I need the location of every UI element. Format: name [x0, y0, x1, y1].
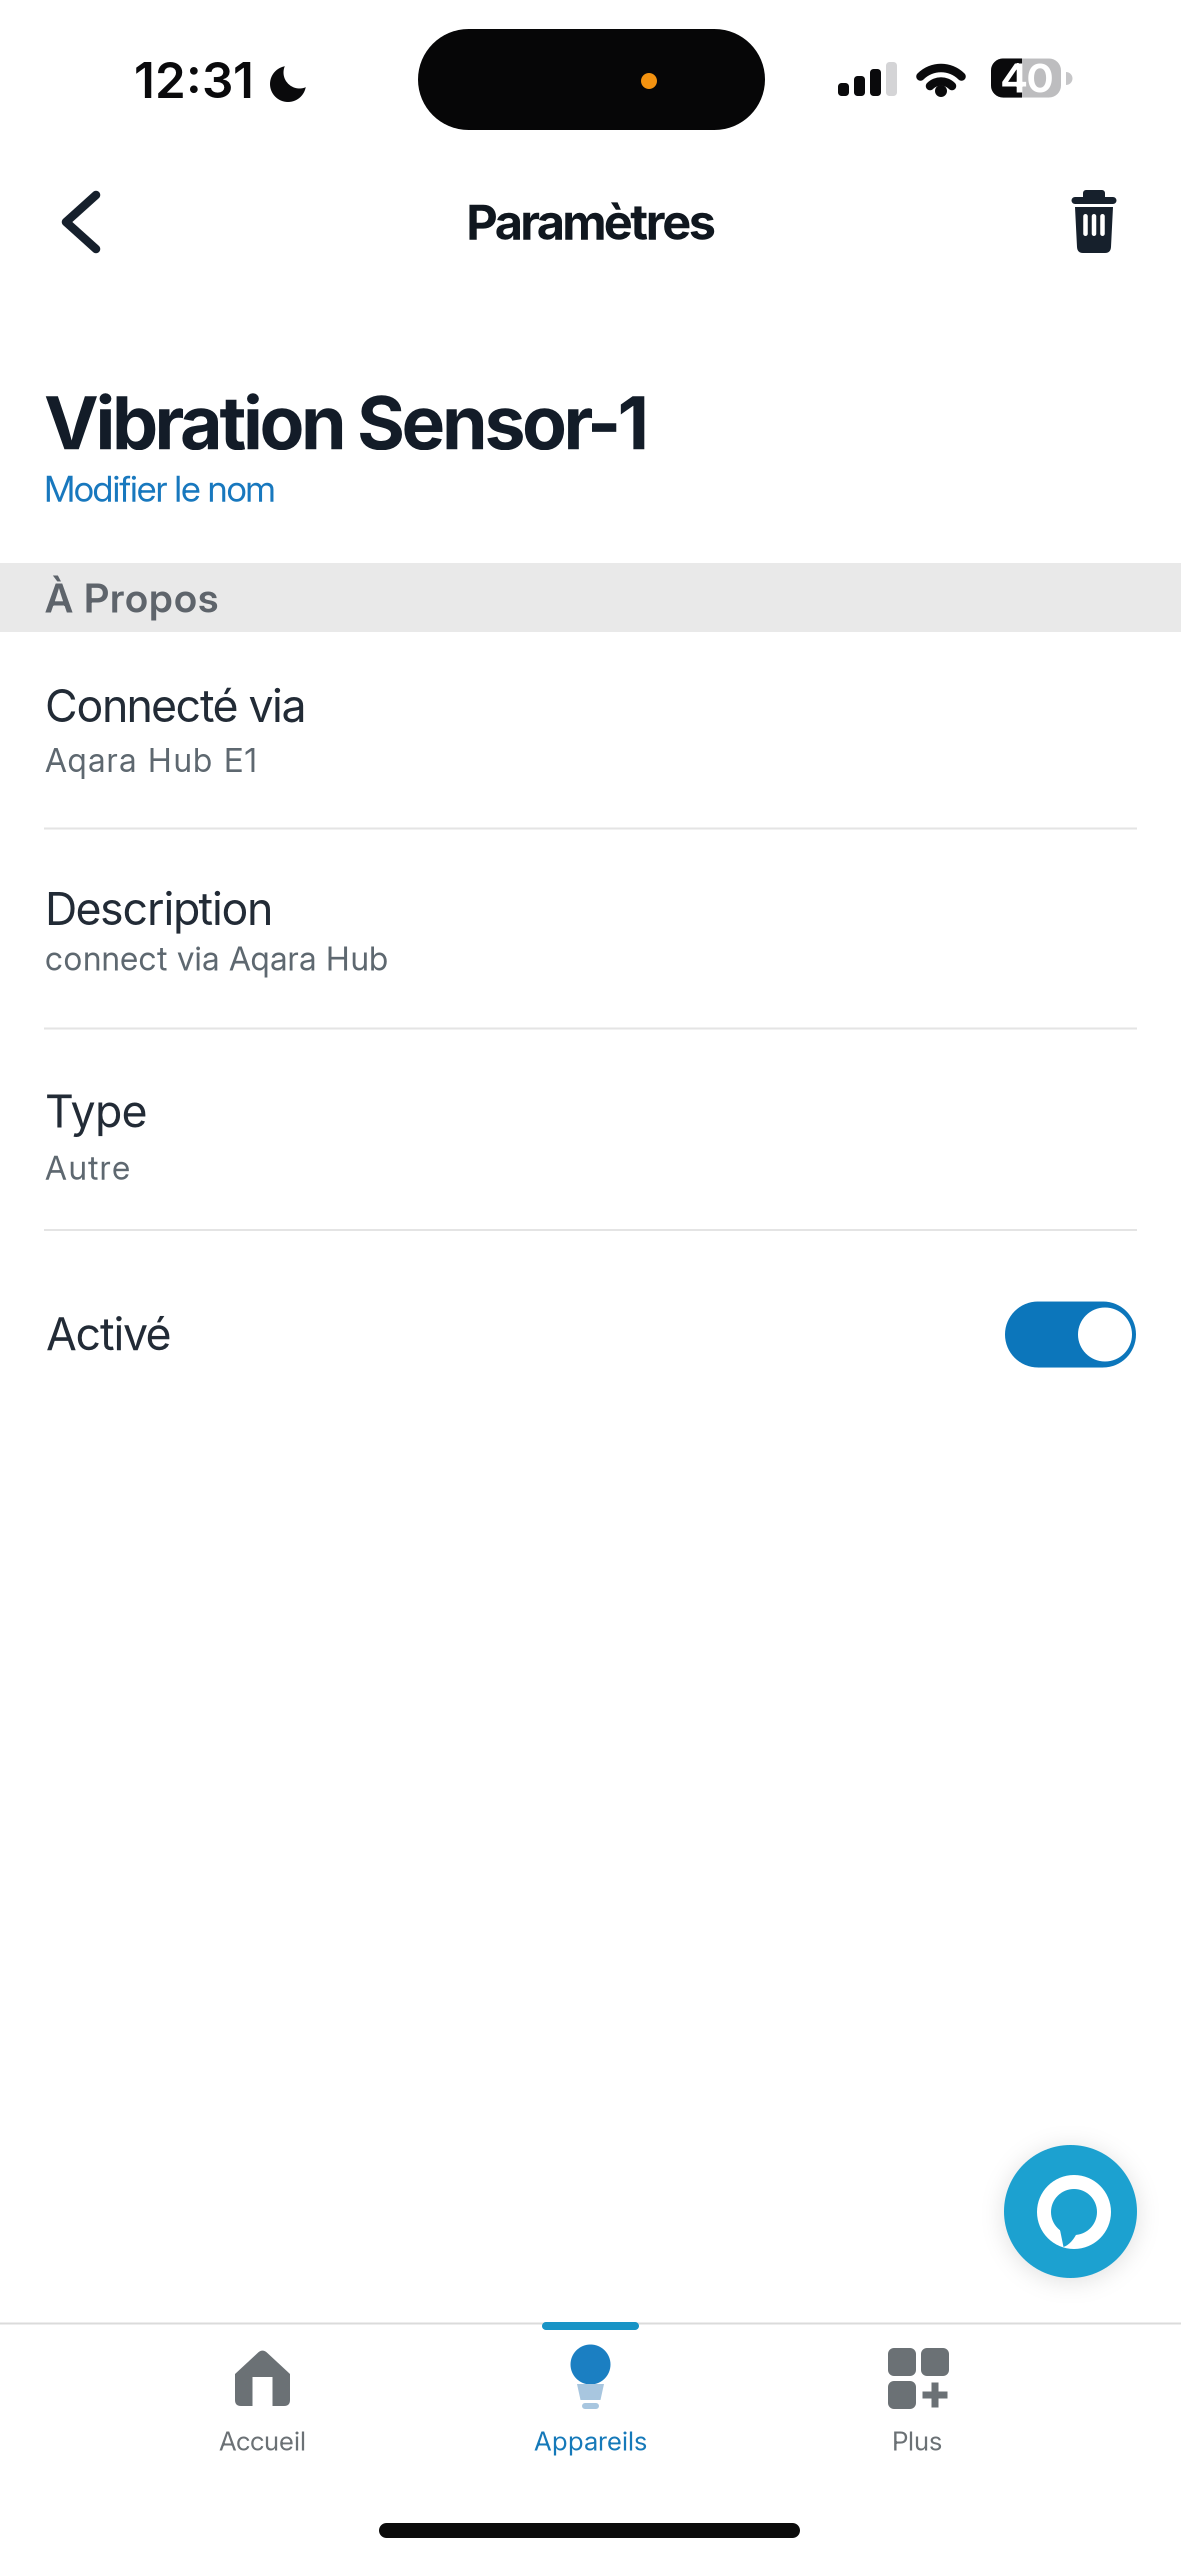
staticText: connect via Aqara Hub	[45, 939, 388, 978]
staticText: 12:31	[134, 50, 254, 110]
staticText: Modifier le nom	[44, 467, 276, 510]
button[interactable]: Supprimer	[1056, 179, 1132, 269]
staticText: Vibration Sensor-1	[44, 378, 649, 467]
staticText: Aqara Hub E1	[45, 740, 256, 780]
staticText: Accueil	[219, 2425, 306, 2457]
staticText: 40	[1001, 54, 1053, 102]
staticText: Plus	[892, 2425, 942, 2457]
staticText: Description	[45, 882, 273, 936]
button[interactable]: Appareils	[509, 2340, 671, 2460]
button[interactable]: Accueil	[181, 2340, 343, 2460]
staticText: Appareils	[534, 2425, 647, 2457]
button[interactable]: Plus	[836, 2340, 998, 2460]
button[interactable]: Modifier le nom	[44, 467, 444, 510]
button[interactable]: Activé	[1005, 1301, 1136, 1367]
staticText: Connecté via	[45, 679, 306, 733]
staticText: Paramètres	[466, 193, 716, 251]
staticText: Type	[45, 1084, 147, 1138]
staticText: À Propos	[45, 574, 218, 622]
staticText: Activé	[46, 1307, 171, 1361]
staticText: Autre	[45, 1148, 130, 1187]
button[interactable]: Retour	[43, 166, 119, 278]
button[interactable]: Alexa	[1004, 2145, 1137, 2278]
